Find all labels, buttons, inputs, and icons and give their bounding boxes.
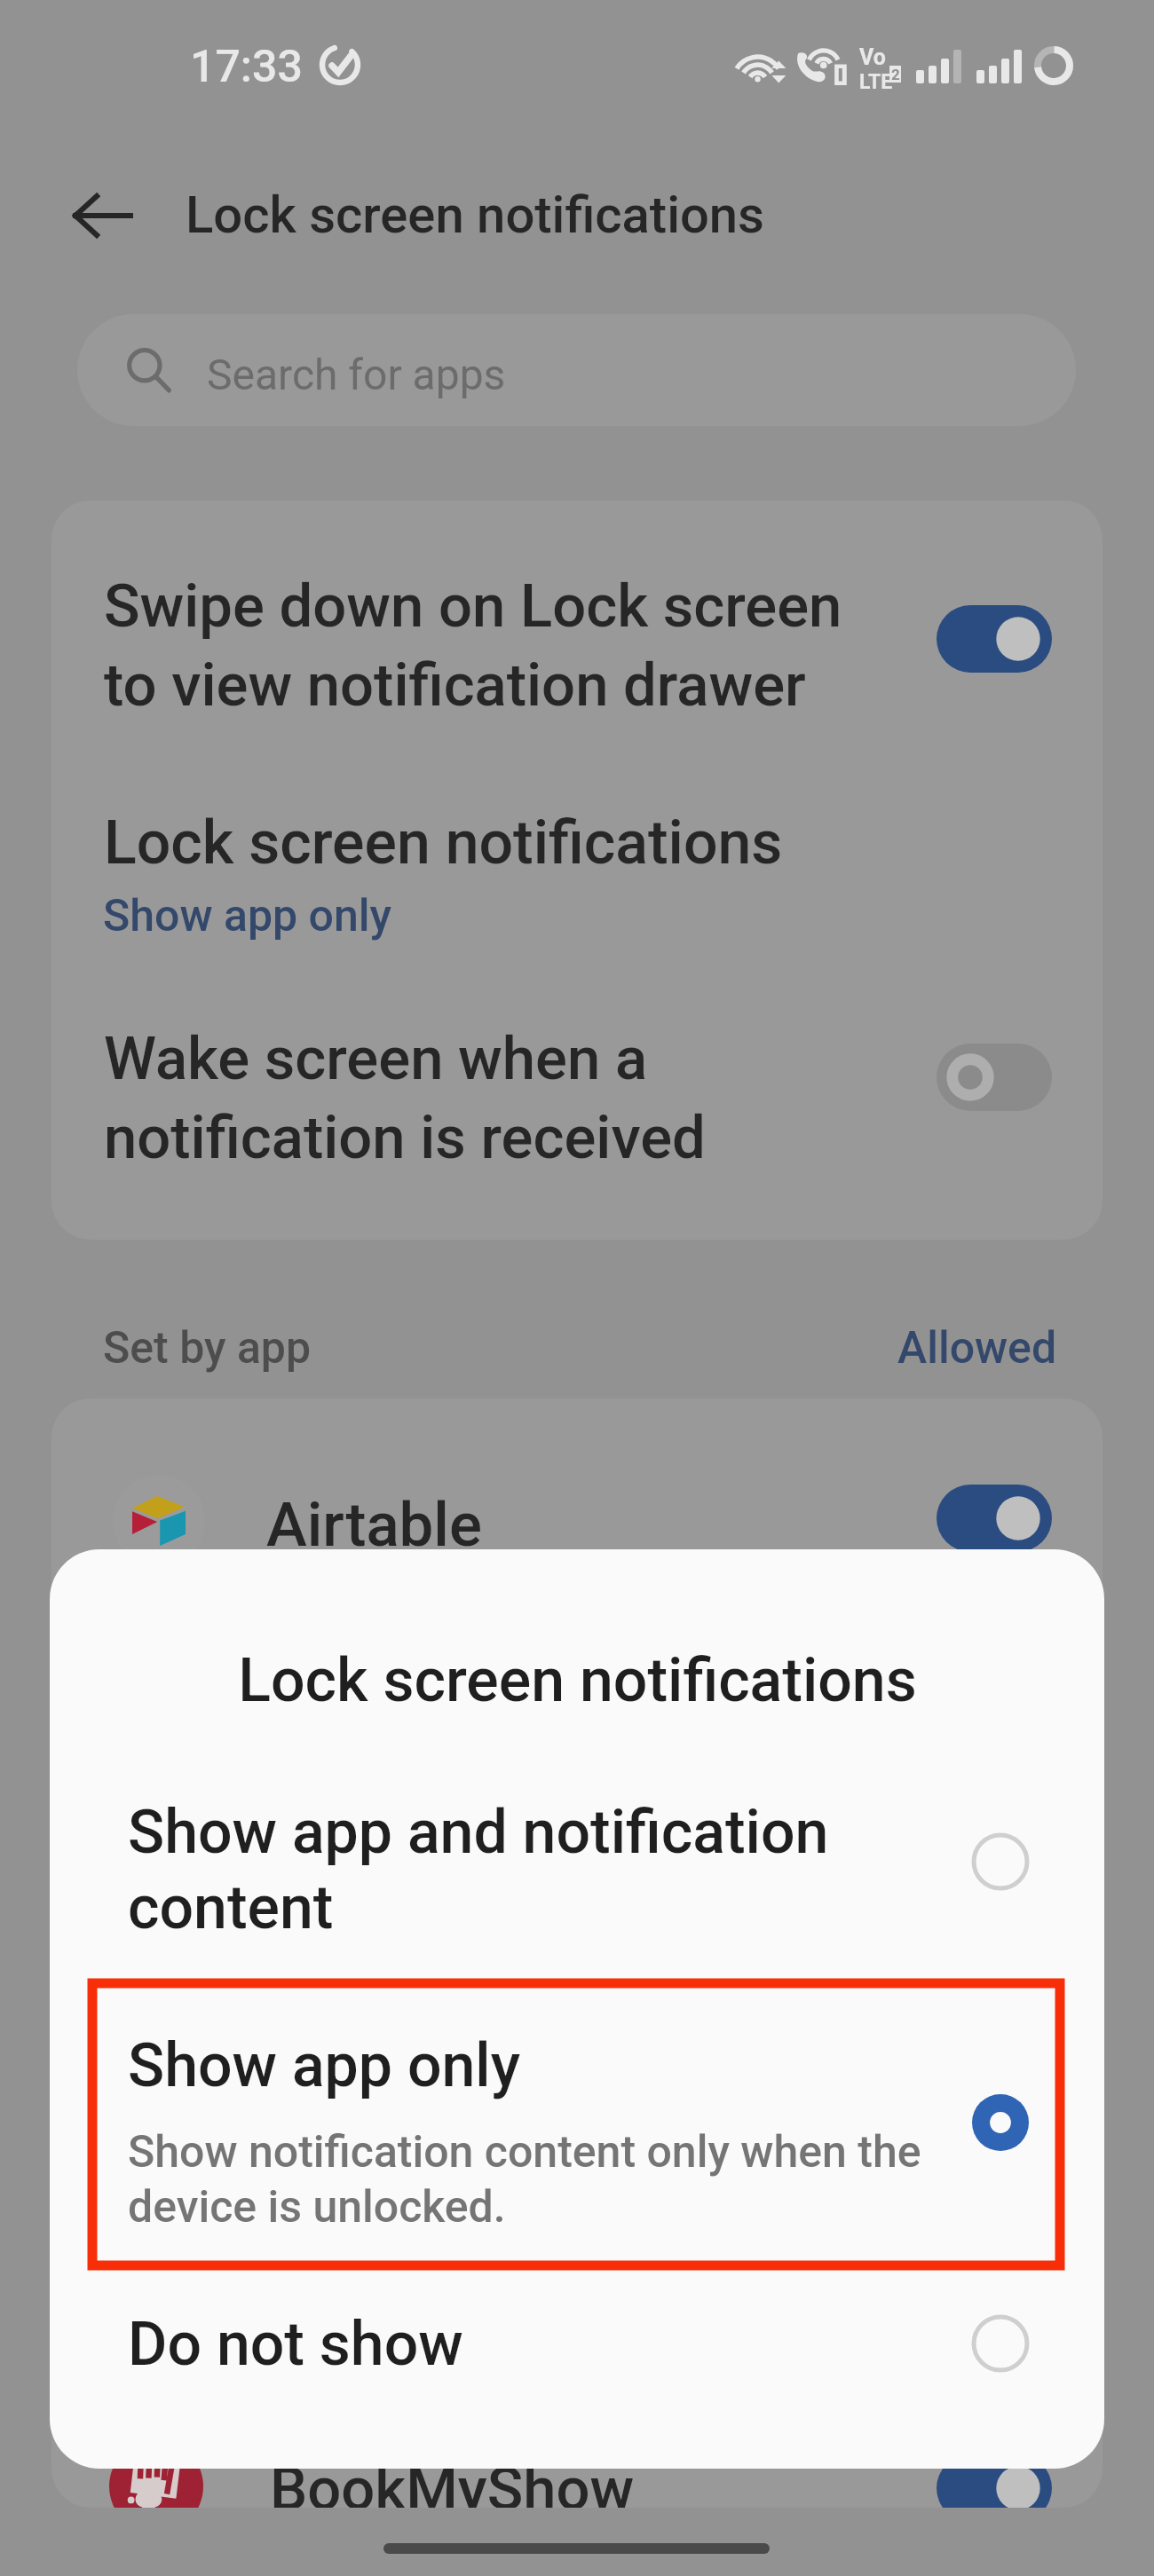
staticText: Vo: [859, 44, 886, 70]
staticText: Swipe down on Lock screen to view notifi…: [104, 571, 842, 721]
staticText: Show app only: [128, 2030, 520, 2101]
staticText: Show notification content only when the …: [128, 2126, 921, 2233]
staticText: Show app only: [103, 890, 391, 942]
button[interactable]: Navigate up: [58, 170, 146, 259]
staticText: Airtable: [266, 1489, 482, 1561]
staticText: Show app and notification content: [128, 1797, 829, 1943]
button[interactable]: On: [937, 605, 1052, 673]
staticText: Do not show: [128, 2309, 463, 2380]
staticText: BookMyShow: [270, 2454, 635, 2508]
staticText: Lock screen notifications: [186, 185, 764, 245]
staticText: Lock screen notifications: [238, 1645, 917, 1716]
staticText: Wake screen when a notification is recei…: [104, 1024, 706, 1173]
button[interactable]: Off: [937, 1044, 1052, 1111]
staticText: 2: [891, 66, 900, 83]
button[interactable]: Wake screen when a notification is recei…: [51, 981, 1103, 1186]
button[interactable]: Airtable: [51, 1398, 1103, 1638]
staticText: Set by app: [103, 1322, 312, 1375]
button[interactable]: Search for apps: [77, 314, 1076, 426]
staticText: Allowed: [897, 1322, 1057, 1375]
button[interactable]: Show app and notification content: [50, 1797, 1104, 1974]
staticText: 17:33: [190, 41, 303, 93]
button[interactable]: Show app only: [50, 2030, 1104, 2279]
button[interactable]: Swipe down on Lock screen to view notifi…: [51, 525, 1103, 729]
staticText: LTE: [859, 70, 893, 94]
button[interactable]: Do not show: [50, 2309, 1104, 2469]
button[interactable]: BookMyShow: [51, 2414, 1103, 2508]
staticText: Search for apps: [207, 350, 506, 399]
button[interactable]: On: [937, 1485, 1052, 1552]
button[interactable]: On: [937, 2454, 1052, 2508]
staticText: Lock screen notifications: [104, 807, 783, 878]
button[interactable]: Lock screen notifications: [51, 767, 1103, 957]
